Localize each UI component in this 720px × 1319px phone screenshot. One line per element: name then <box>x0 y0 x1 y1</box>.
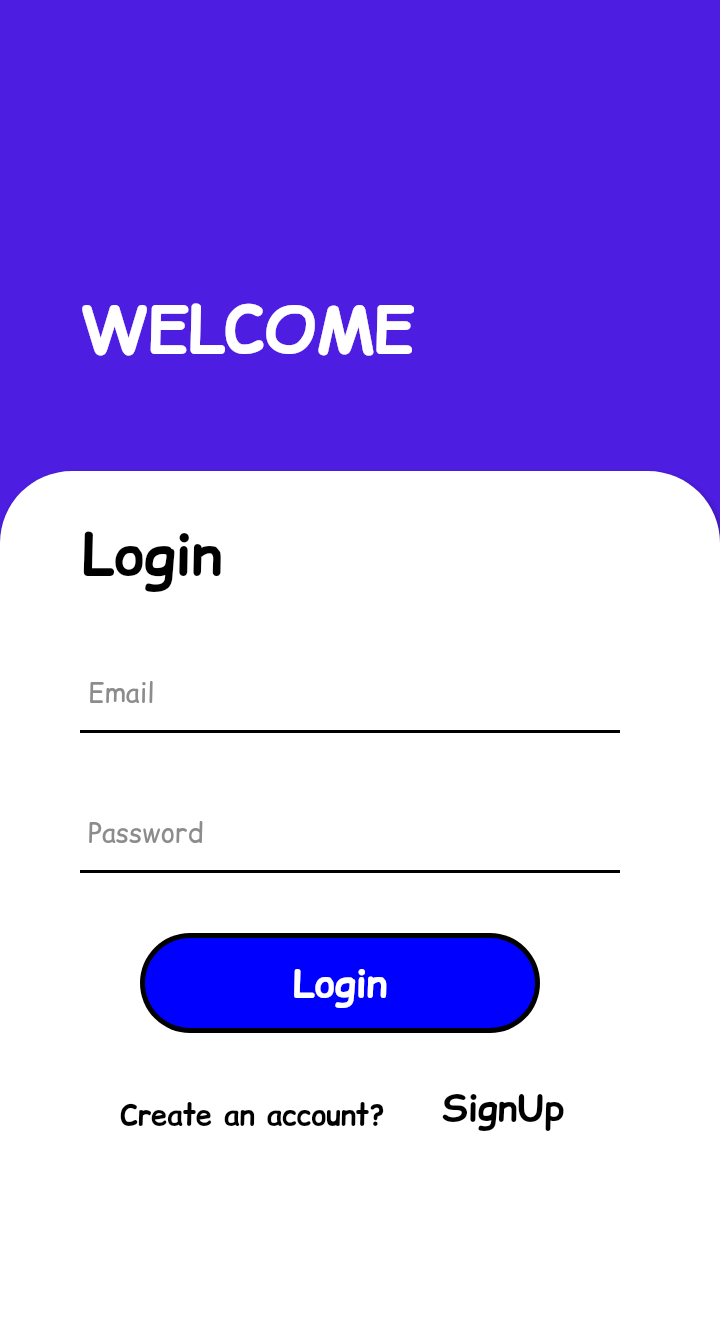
button[interactable]: SignUp <box>428 1068 579 1148</box>
button[interactable]: Password <box>80 792 620 883</box>
staticText: Login <box>82 514 222 595</box>
staticText: Email <box>88 674 155 712</box>
button[interactable]: Email <box>80 652 620 743</box>
staticText: WELCOME <box>80 283 415 375</box>
staticText: Create an account? <box>120 1094 385 1134</box>
staticText: SignUp <box>442 1082 565 1134</box>
button[interactable]: Create an account? <box>106 1080 399 1148</box>
staticText: Password <box>88 814 204 852</box>
button[interactable]: Login <box>145 938 535 1028</box>
staticText: Login <box>293 956 388 1010</box>
